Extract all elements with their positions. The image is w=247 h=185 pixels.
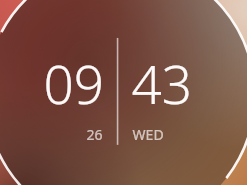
button[interactable]: Watch face, 09:43, Wednesday 26: [0, 0, 247, 185]
